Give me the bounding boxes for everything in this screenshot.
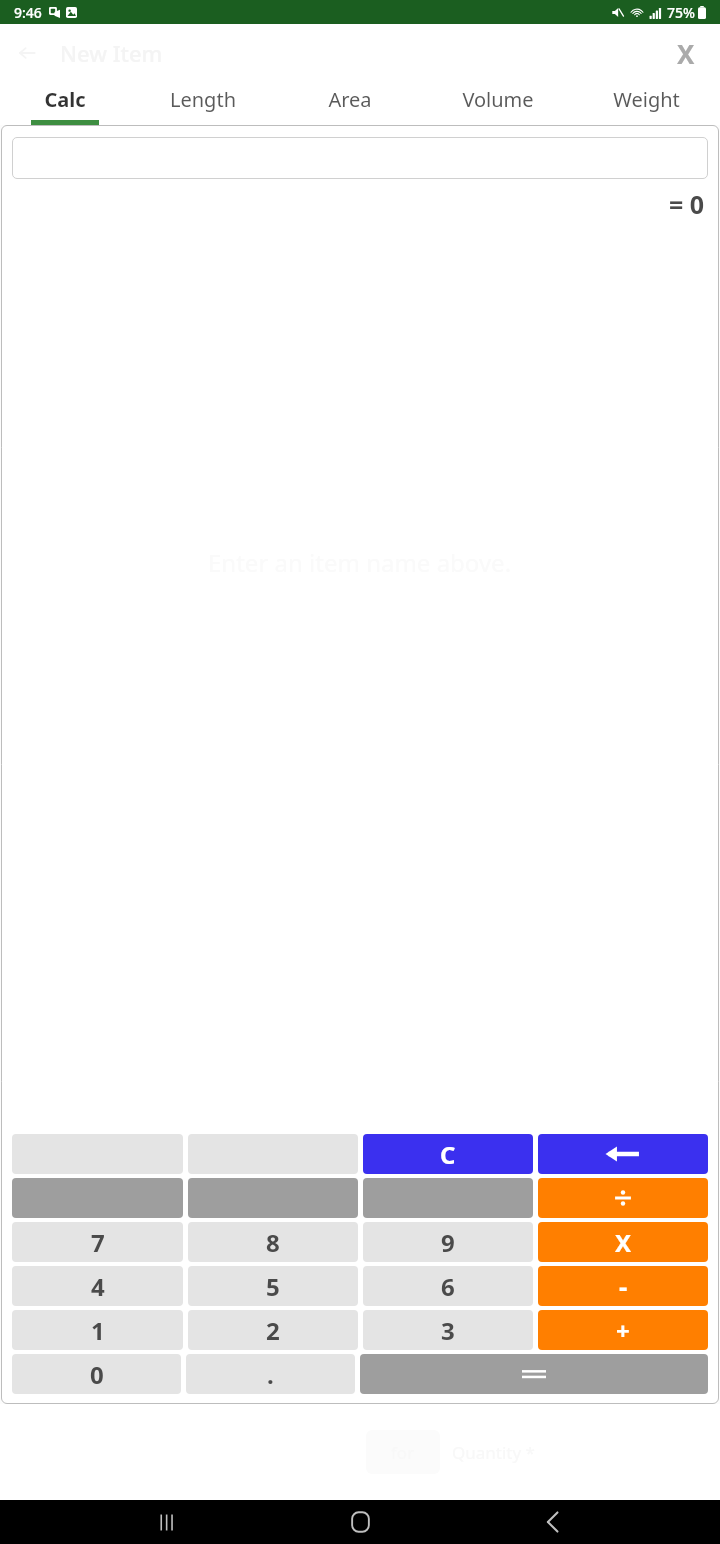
- button[interactable]: Divide: [538, 1178, 708, 1218]
- staticText: Volume: [462, 86, 534, 113]
- button[interactable]: 5: [188, 1266, 358, 1306]
- button[interactable]: C: [363, 1134, 533, 1174]
- button[interactable]: 0: [12, 1354, 181, 1394]
- staticText: X: [677, 36, 695, 71]
- staticText: 6: [441, 1270, 455, 1303]
- staticText: 4: [91, 1270, 105, 1303]
- staticText: 9:46: [14, 3, 42, 22]
- button[interactable]: 1: [12, 1310, 183, 1350]
- button[interactable]: Weight: [572, 82, 720, 125]
- button[interactable]: Area: [276, 82, 424, 125]
- staticText: +: [616, 1314, 630, 1347]
- staticText: New Item: [60, 38, 163, 68]
- button[interactable]: Equals: [360, 1354, 708, 1394]
- button[interactable]: 6: [363, 1266, 533, 1306]
- staticText: Calc: [44, 86, 86, 113]
- staticText: = 0: [669, 187, 705, 221]
- staticText: 5: [266, 1270, 280, 1303]
- button[interactable]: Key: [188, 1178, 358, 1218]
- button[interactable]: 9: [363, 1222, 533, 1262]
- button[interactable]: Multiply: [538, 1222, 708, 1262]
- staticText: 2: [266, 1314, 280, 1347]
- button[interactable]: 8: [188, 1222, 358, 1262]
- staticText: Weight: [613, 86, 680, 113]
- staticText: 75%: [667, 3, 695, 22]
- staticText: 8: [266, 1226, 280, 1259]
- button[interactable]: Back: [527, 1500, 579, 1544]
- button[interactable]: Close: [664, 31, 708, 75]
- button[interactable]: Backspace: [538, 1134, 708, 1174]
- staticText: 9: [441, 1226, 455, 1259]
- button[interactable]: 2: [188, 1310, 358, 1350]
- button[interactable]: Minus: [538, 1266, 708, 1306]
- button[interactable]: 4: [12, 1266, 183, 1306]
- button[interactable]: Recents: [141, 1500, 193, 1544]
- staticText: Area: [328, 86, 372, 113]
- staticText: 1: [91, 1314, 105, 1347]
- button[interactable]: Key: [363, 1178, 533, 1218]
- button[interactable]: Key: [12, 1178, 183, 1218]
- button[interactable]: Length: [129, 82, 276, 125]
- staticText: 7: [91, 1226, 105, 1259]
- button[interactable]: Home: [334, 1500, 386, 1544]
- staticText: X: [615, 1226, 632, 1259]
- button[interactable]: [12, 137, 708, 179]
- button[interactable]: Calc: [0, 82, 129, 125]
- staticText: Length: [170, 86, 236, 113]
- button[interactable]: 7: [12, 1222, 183, 1262]
- button[interactable]: Plus: [538, 1310, 708, 1350]
- staticText: 3: [441, 1314, 455, 1347]
- button[interactable]: Volume: [424, 82, 572, 125]
- staticText: C: [440, 1138, 456, 1171]
- staticText: 0: [90, 1358, 104, 1391]
- button[interactable]: 3: [363, 1310, 533, 1350]
- staticText: .: [267, 1358, 274, 1391]
- button[interactable]: .: [186, 1354, 355, 1394]
- staticText: -: [619, 1269, 628, 1304]
